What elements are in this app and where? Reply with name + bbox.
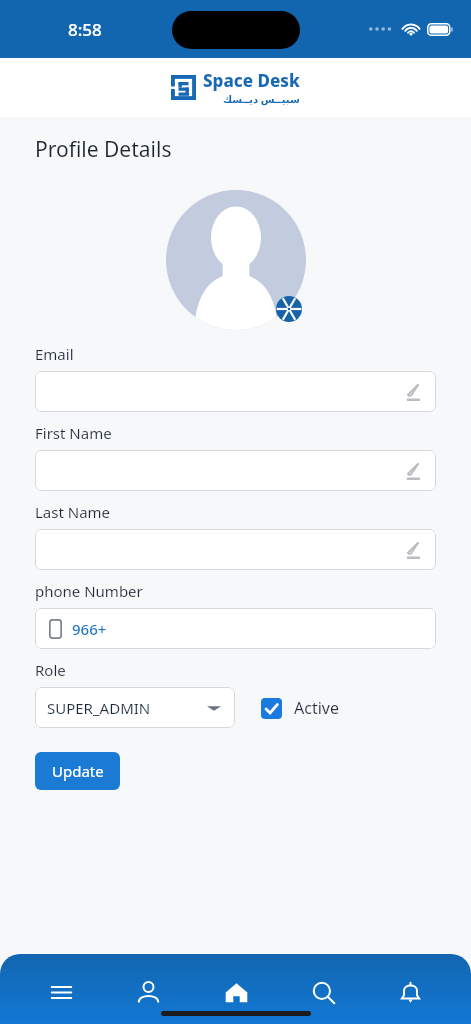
- button[interactable]: [35, 529, 436, 570]
- staticText: Update: [52, 761, 104, 781]
- button[interactable]: Profile: [122, 966, 174, 1018]
- button[interactable]: SUPER_ADMIN: [35, 687, 235, 728]
- button[interactable]: Change photo: [276, 296, 302, 322]
- staticText: Last Name: [35, 502, 111, 522]
- staticText: 8:58: [68, 18, 102, 41]
- button[interactable]: Active: [261, 697, 339, 719]
- button[interactable]: Home: [210, 966, 262, 1018]
- button[interactable]: 966+: [35, 608, 436, 649]
- button[interactable]: Notifications: [384, 966, 436, 1018]
- staticText: 966+: [72, 619, 107, 639]
- staticText: phone Number: [35, 581, 143, 601]
- staticText: سبيــس ديــسك: [223, 92, 300, 106]
- staticText: Active: [294, 697, 339, 719]
- staticText: SUPER_ADMIN: [47, 698, 151, 718]
- button[interactable]: [35, 371, 436, 412]
- staticText: First Name: [35, 423, 112, 443]
- button[interactable]: Update: [35, 752, 120, 790]
- staticText: Role: [35, 660, 66, 680]
- button[interactable]: [35, 450, 436, 491]
- staticText: Profile Details: [35, 135, 172, 164]
- button[interactable]: Search: [297, 966, 349, 1018]
- staticText: Space Desk: [203, 69, 300, 92]
- staticText: Email: [35, 344, 74, 364]
- button[interactable]: Menu: [35, 966, 87, 1018]
